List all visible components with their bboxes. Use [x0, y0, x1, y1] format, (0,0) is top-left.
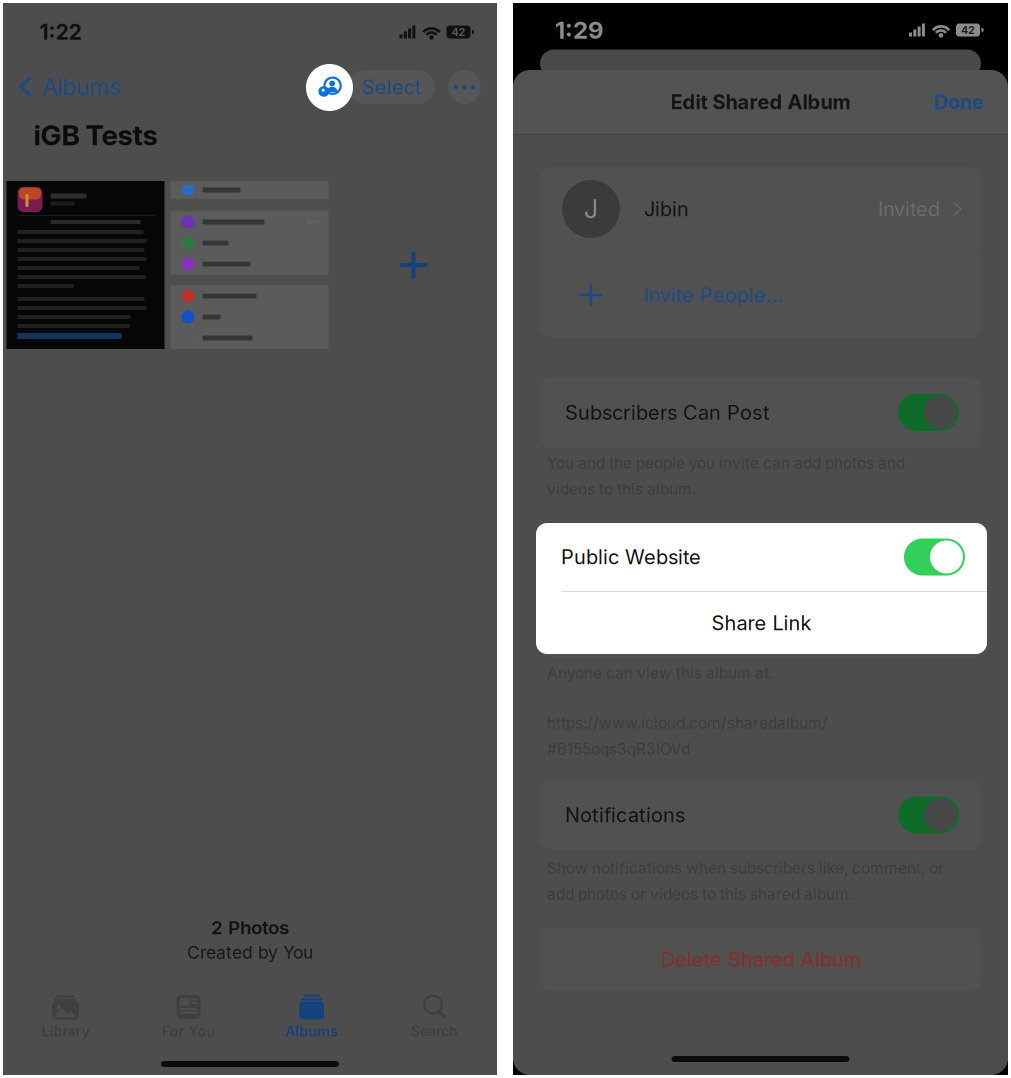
staticText: Delete Shared Album	[660, 947, 860, 972]
staticText: Created by You	[187, 942, 313, 963]
button[interactable]: Select	[348, 70, 434, 104]
staticText: https://www.icloud.com/sharedalbum/	[547, 714, 828, 732]
staticText: 1:29	[555, 15, 603, 44]
button[interactable]: Share Link	[536, 592, 987, 654]
staticText: Public Website	[561, 545, 701, 569]
button[interactable]: More options	[448, 70, 480, 104]
staticText: Select	[361, 75, 421, 99]
staticText: Share Link	[711, 611, 811, 635]
staticText: Notifications	[565, 803, 685, 827]
staticText: videos to this album.	[547, 480, 696, 498]
staticText: Invite People...	[644, 283, 784, 307]
button[interactable]: Shared album members	[306, 64, 353, 111]
staticText: For You	[161, 1023, 215, 1040]
staticText: You and the people you invite can add ph…	[547, 454, 905, 472]
button[interactable]: Albums	[250, 991, 373, 1043]
staticText: 2 Photos	[211, 916, 289, 939]
staticText: Jibin	[644, 197, 689, 221]
button[interactable]: Public Website	[536, 523, 987, 591]
staticText: Albums	[285, 1023, 338, 1040]
button[interactable]: For You	[127, 991, 250, 1043]
button[interactable]: Add photos	[334, 181, 492, 349]
staticText: Subscribers Can Post	[565, 400, 770, 425]
staticText: 42	[451, 25, 465, 38]
staticText: Library	[41, 1023, 89, 1040]
staticText: Public Website	[565, 549, 705, 573]
staticText: Search	[411, 1023, 458, 1040]
staticText: Show notifications when subscribers like…	[547, 859, 944, 877]
staticText: Share Link	[710, 615, 810, 639]
staticText: Edit Shared Album	[670, 90, 850, 114]
button[interactable]: Albums	[15, 65, 124, 109]
button[interactable]: J	[540, 167, 981, 251]
staticText: Invited	[878, 197, 940, 221]
button[interactable]: Done	[922, 80, 996, 124]
button[interactable]: Invite People...	[540, 252, 981, 338]
staticText: 1:22	[39, 19, 81, 45]
staticText: Done	[934, 90, 984, 114]
staticText: J	[584, 194, 598, 224]
staticText: 42	[961, 23, 975, 36]
staticText: Albums	[42, 73, 121, 101]
staticText: Anyone can view this album at.	[547, 664, 773, 682]
staticText: #B155oqs3qR3lOVd	[547, 740, 690, 758]
staticText: add photos or videos to this shared albu…	[547, 885, 853, 903]
staticText: iGB Tests	[33, 118, 157, 152]
button[interactable]: Library	[4, 991, 127, 1043]
button[interactable]: Delete Shared Album	[513, 928, 1008, 991]
